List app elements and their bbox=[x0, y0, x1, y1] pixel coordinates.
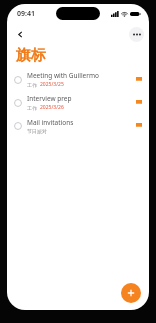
staticText: 2025/3/25 bbox=[40, 81, 64, 88]
staticText: Interview prep bbox=[27, 94, 72, 103]
button[interactable]: Meeting with Guillermo bbox=[7, 68, 149, 91]
button[interactable]: Back bbox=[12, 26, 28, 42]
button[interactable]: Add reminder bbox=[121, 283, 141, 303]
staticText: 节日派对 bbox=[27, 128, 47, 134]
button[interactable]: Mail invitations bbox=[7, 114, 149, 137]
button[interactable]: Interview prep bbox=[7, 91, 149, 114]
staticText: Meeting with Guillermo bbox=[27, 71, 99, 80]
staticText: 工作 bbox=[27, 105, 37, 111]
staticText: 09:41 bbox=[17, 9, 35, 19]
button[interactable]: More options bbox=[129, 27, 144, 42]
staticText: 旗标 bbox=[16, 46, 46, 65]
staticText: Mail invitations bbox=[27, 118, 74, 127]
staticText: 工作 bbox=[27, 82, 37, 88]
staticText: 2025/3/26 bbox=[40, 104, 64, 111]
